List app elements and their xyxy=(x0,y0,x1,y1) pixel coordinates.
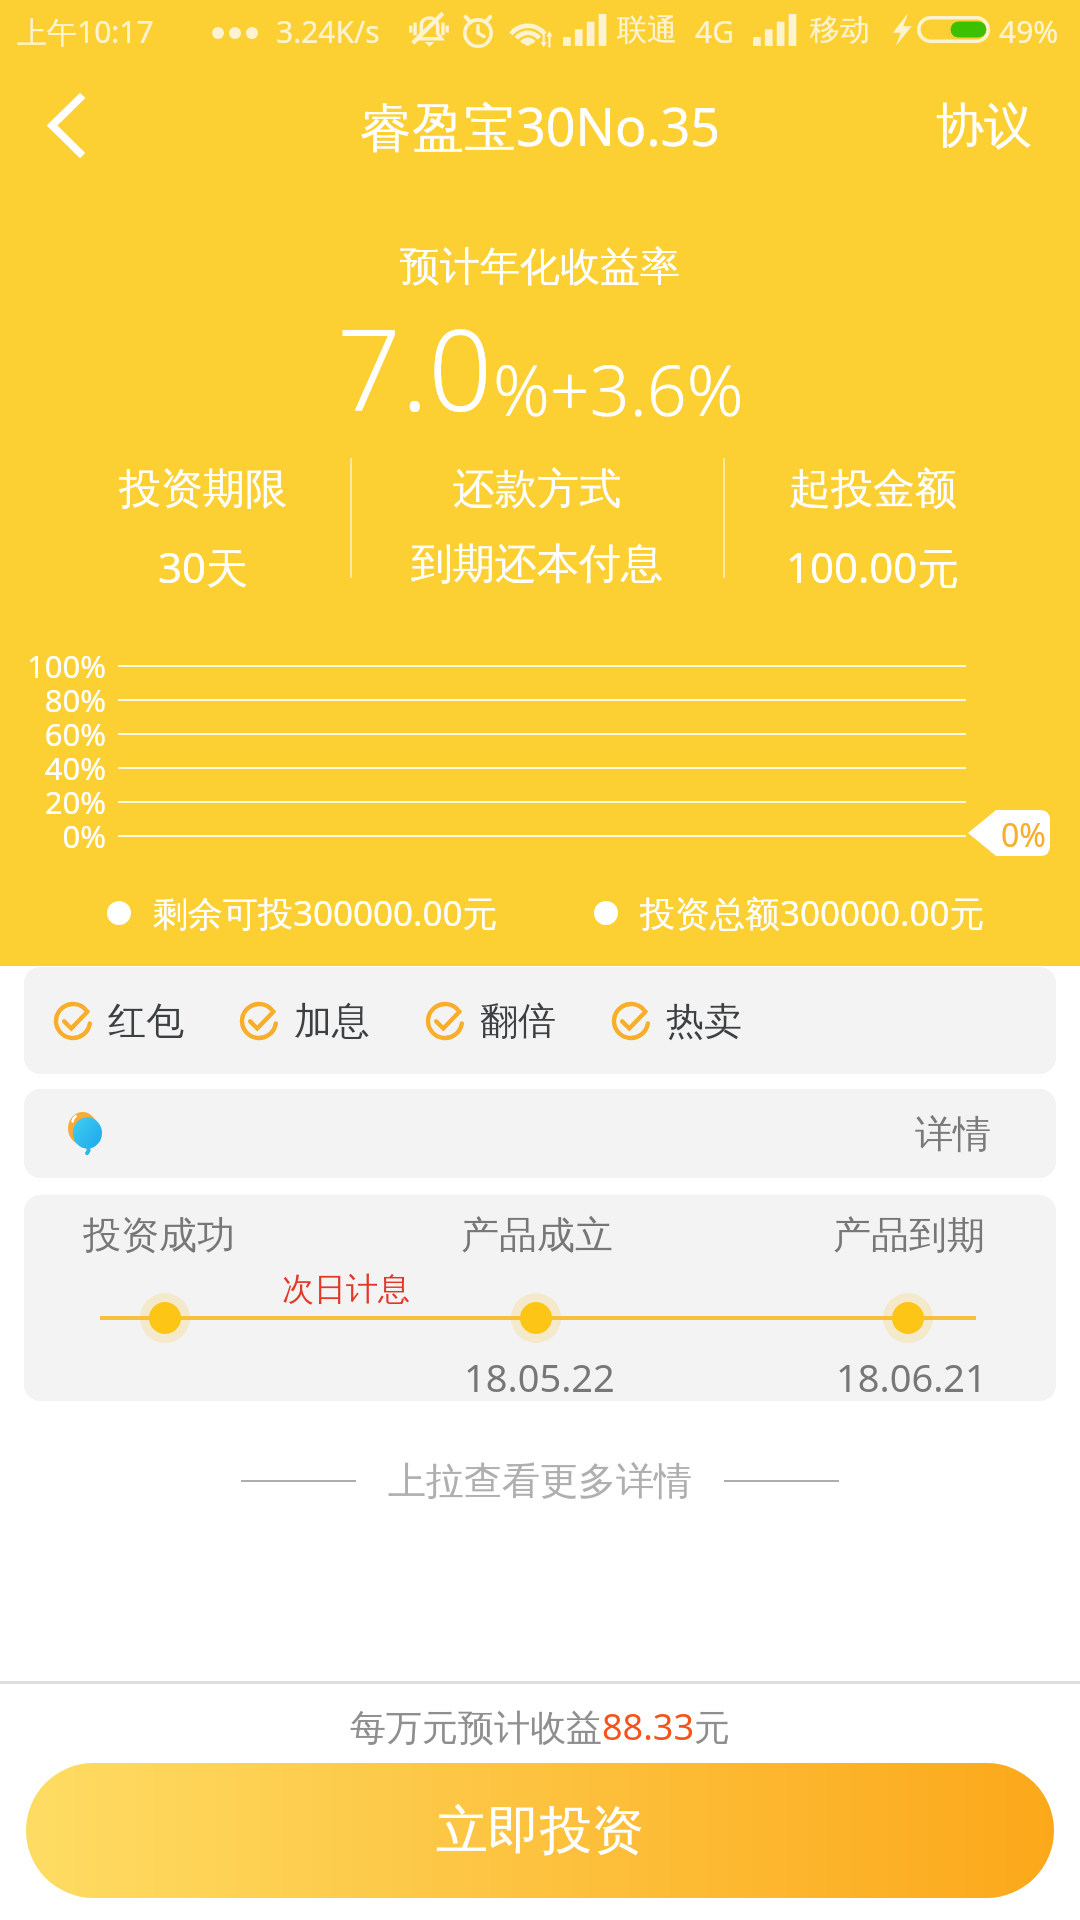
staticText: 18.06.21 xyxy=(836,1351,987,1401)
staticText: 产品成立 xyxy=(461,1211,613,1259)
button[interactable]: 投资成功 xyxy=(24,1195,1056,1401)
staticText: 0% xyxy=(1001,813,1046,857)
staticText: 加息 xyxy=(294,997,370,1045)
staticText: 投资总额300000.00元 xyxy=(640,889,985,937)
staticText: 起投金额 xyxy=(789,463,957,516)
staticText: 上午10:17 xyxy=(17,11,154,52)
button[interactable]: 翻倍 xyxy=(424,967,600,1074)
staticText: 翻倍 xyxy=(480,997,556,1045)
staticText: 预计年化收益率 xyxy=(0,241,1080,291)
staticText: 上拉查看更多详情 xyxy=(388,1457,692,1505)
staticText: 40% xyxy=(6,747,106,789)
staticText: 18.05.22 xyxy=(464,1351,615,1401)
staticText: 100% xyxy=(6,645,106,687)
staticText: 20% xyxy=(6,781,106,823)
staticText: 49% xyxy=(999,11,1059,52)
staticText: 30天 xyxy=(158,538,249,595)
staticText: 每万元预计收益88.33元 xyxy=(0,1702,1080,1751)
button[interactable]: 加息 xyxy=(238,967,414,1074)
staticText: 联通 xyxy=(617,11,677,49)
staticText: 详情 xyxy=(915,1110,991,1158)
staticText: 投资期限 xyxy=(119,463,287,516)
staticText: 红包 xyxy=(108,997,184,1045)
staticText: 到期还本付息 xyxy=(411,538,663,591)
staticText: 4G xyxy=(695,11,734,52)
staticText: 3.24K/s xyxy=(276,11,380,52)
staticText: %+3.6% xyxy=(493,341,744,436)
staticText: 还款方式 xyxy=(453,463,621,516)
staticText: 产品到期 xyxy=(833,1211,985,1259)
button[interactable]: 热卖 xyxy=(610,967,786,1074)
staticText: 100.00元 xyxy=(786,538,960,595)
staticText: 剩余可投300000.00元 xyxy=(153,889,498,937)
button[interactable]: 详情 xyxy=(24,1089,1056,1178)
staticText: 次日计息 xyxy=(282,1269,410,1309)
staticText: 协议 xyxy=(936,96,1032,156)
staticText: 60% xyxy=(6,713,106,755)
staticText: 0% xyxy=(6,815,106,857)
staticText: 投资成功 xyxy=(83,1211,235,1259)
button[interactable]: 协议 xyxy=(912,72,1080,180)
staticText: 立即投资 xyxy=(436,1798,644,1864)
button[interactable]: 上拉查看更多详情 xyxy=(0,1443,1080,1519)
staticText: 移动 xyxy=(810,11,870,49)
button[interactable]: 立即投资 xyxy=(26,1763,1054,1898)
staticText: 80% xyxy=(6,679,106,721)
staticText: 7.0 xyxy=(337,291,493,444)
staticText: 睿盈宝30No.35 xyxy=(360,90,720,161)
button[interactable]: 红包 xyxy=(52,967,228,1074)
button[interactable]: Back xyxy=(0,67,118,185)
staticText: 热卖 xyxy=(666,997,742,1045)
